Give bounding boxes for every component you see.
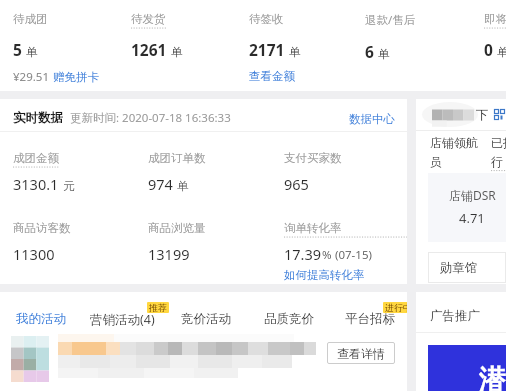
staticText: 店铺领航 xyxy=(430,135,478,150)
staticText: 商品浏览量 xyxy=(148,221,206,235)
button[interactable]: 待发货 xyxy=(118,0,236,91)
staticText: (07-15) xyxy=(335,247,372,263)
staticText: 查看详情 xyxy=(337,346,385,361)
button[interactable]: 平台招标 xyxy=(345,292,395,330)
staticText: 即将 xyxy=(484,12,506,26)
staticText: 竞价活动 xyxy=(181,311,231,327)
button[interactable]: 勋章馆 xyxy=(428,252,506,283)
staticText: 更新时间: 2020-07-18 16:36:33 xyxy=(70,110,231,126)
staticText: 退款/售后 xyxy=(365,12,416,28)
button[interactable]: 退款/售后 xyxy=(352,0,471,91)
staticText: 店铺DSR xyxy=(449,187,496,203)
button[interactable]: 我的活动 xyxy=(16,292,66,330)
staticText: 我的活动 xyxy=(16,311,66,327)
staticText: 2171 xyxy=(249,39,285,60)
staticText: 4.71 xyxy=(459,209,485,227)
staticText: 元 xyxy=(63,179,75,193)
staticText: 974 xyxy=(148,174,173,194)
staticText: 1261 xyxy=(131,39,167,60)
staticText: 单 xyxy=(497,45,506,59)
staticText: 待成团 xyxy=(13,12,48,26)
staticText: 查看金额 xyxy=(249,69,295,83)
staticText: 广告推广 xyxy=(430,308,480,324)
staticText: 0 xyxy=(484,39,493,60)
button[interactable]: 查看详情 xyxy=(327,342,395,364)
button[interactable]: 即将 xyxy=(471,0,506,91)
staticText: 进行中 xyxy=(385,302,412,313)
staticText: 965 xyxy=(284,174,309,194)
staticText: 5 xyxy=(13,39,22,60)
staticText: 单 xyxy=(378,47,390,61)
button[interactable]: 如何提高转化率 xyxy=(284,268,365,282)
staticText: 3130.1 xyxy=(13,174,59,194)
staticText: 品质竞价 xyxy=(264,311,314,327)
staticText: 已报 xyxy=(491,135,506,150)
staticText: 营销活动(4) xyxy=(90,311,155,328)
button[interactable]: QR code xyxy=(494,109,505,120)
button[interactable]: 店铺领航 xyxy=(430,135,491,169)
button[interactable]: 数据中心 xyxy=(349,112,395,126)
staticText: 支付买家数 xyxy=(284,151,342,165)
staticText: ¥29.51 xyxy=(13,69,49,85)
staticText: 下 xyxy=(476,107,489,123)
button[interactable]: 待成团 xyxy=(0,0,118,91)
staticText: 17.39 xyxy=(284,244,322,264)
staticText: % xyxy=(322,247,332,263)
staticText: 成团金额 xyxy=(13,151,59,165)
staticText: 待签收 xyxy=(249,12,284,26)
button[interactable]: 待签收 xyxy=(236,0,352,91)
button[interactable]: 已报 xyxy=(491,135,506,172)
staticText: 13199 xyxy=(148,244,190,264)
staticText: 成团订单数 xyxy=(148,151,206,165)
staticText: 商品访客数 xyxy=(13,221,71,235)
button[interactable]: 竞价活动 xyxy=(181,292,231,330)
staticText: 员 xyxy=(430,154,442,169)
button[interactable]: 品质竞价 xyxy=(264,292,314,330)
staticText: 6 xyxy=(365,41,374,62)
staticText: 待发货 xyxy=(131,12,166,26)
staticText: 平台招标 xyxy=(345,311,395,327)
staticText: 询单转化率 xyxy=(284,221,342,235)
staticText: 赠免拼卡 xyxy=(53,70,99,84)
staticText: 行 xyxy=(491,154,503,169)
staticText: 潜 xyxy=(479,363,506,391)
staticText: 单 xyxy=(26,45,38,59)
staticText: 单 xyxy=(289,45,301,59)
staticText: 实时数据 xyxy=(13,110,63,126)
staticText: 单 xyxy=(177,179,189,193)
staticText: 单 xyxy=(171,45,183,59)
button[interactable]: 营销活动(4) xyxy=(90,292,155,330)
staticText: 11300 xyxy=(13,244,55,264)
staticText: 勋章馆 xyxy=(440,260,478,276)
staticText: 推荐 xyxy=(149,302,167,313)
